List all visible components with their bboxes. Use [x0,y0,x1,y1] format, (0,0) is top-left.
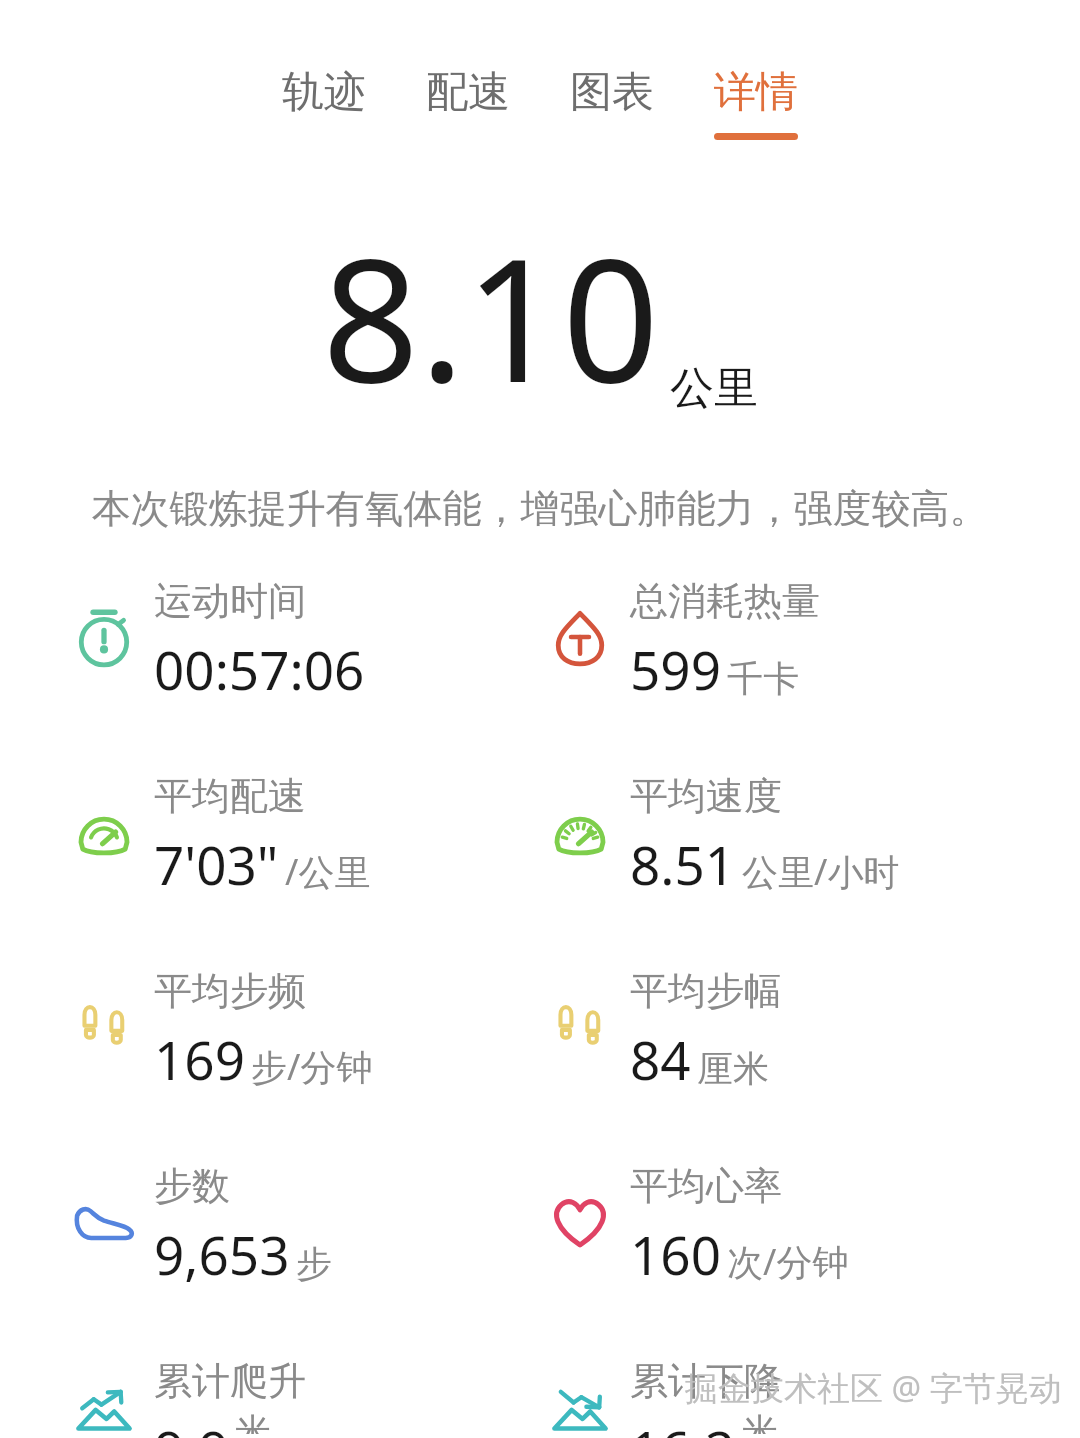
staticText: 160 [630,1218,721,1290]
button[interactable]: 步数 [0,1150,540,1345]
staticText: 米 [235,1409,271,1434]
staticText: 84 [630,1023,691,1095]
other: 平均速度 [548,800,612,864]
staticText: 00:57:06 [154,633,365,705]
staticText: 公里/小时 [742,847,900,896]
staticText: 步 [296,1241,332,1286]
staticText: 次/分钟 [727,1237,849,1286]
staticText: 累计爬升 [154,1357,306,1405]
staticText: 8.51 [630,828,736,900]
staticText: 16.2 [630,1413,736,1438]
staticText: 7'03" [154,828,279,900]
staticText: 步/分钟 [251,1042,373,1091]
button[interactable]: 累计下降 [540,1345,1080,1438]
button[interactable]: 配速 [420,62,516,144]
button[interactable]: 平均心率 [540,1150,1080,1345]
staticText: 9.9 [154,1413,229,1438]
staticText: 本次锻炼提升有氧体能，增强心肺能力，强度较高。 [20,484,1060,533]
staticText: 图表 [570,66,654,119]
other: 平均配速 [72,800,136,864]
staticText: 公里 [670,361,758,416]
staticText: 平均心率 [630,1162,782,1210]
staticText: 累计下降 [630,1357,782,1405]
button[interactable]: 平均配速 [0,760,540,955]
staticText: 千卡 [727,656,799,701]
staticText: 平均步频 [154,967,306,1015]
staticText: 平均配速 [154,772,306,820]
staticText: 厘米 [697,1046,769,1091]
staticText: 步数 [154,1162,230,1210]
staticText: 169 [154,1023,245,1095]
other: 总消耗热量 [548,605,612,669]
other: 累计爬升 [72,1385,136,1438]
staticText: 米 [742,1409,778,1434]
other: 步数 [72,1190,136,1254]
staticText: 599 [630,633,721,705]
staticText: 配速 [426,66,510,119]
button[interactable]: 平均步幅 [540,955,1080,1150]
staticText: 运动时间 [154,577,306,625]
button[interactable]: 总消耗热量 [540,565,1080,760]
other: 运动时间 [72,605,136,669]
staticText: 8.10 [322,200,660,432]
button[interactable]: 平均步频 [0,955,540,1150]
button[interactable]: 轨迹 [276,62,372,144]
button[interactable]: 图表 [564,62,660,144]
staticText: 掘金技术社区 @ 字节晃动 [685,1365,1062,1410]
other: 平均心率 [548,1190,612,1254]
staticText: 9,653 [154,1218,290,1290]
staticText: 轨迹 [282,66,366,119]
staticText: 平均步幅 [630,967,782,1015]
staticText: /公里 [285,847,371,896]
staticText: 详情 [714,66,798,119]
other: 累计下降 [548,1385,612,1438]
other: 平均步幅 [548,995,612,1059]
button[interactable]: 详情 [708,62,804,144]
button[interactable]: 运动时间 [0,565,540,760]
staticText: 平均速度 [630,772,782,820]
staticText: 总消耗热量 [630,577,820,625]
button[interactable]: 累计爬升 [0,1345,540,1438]
button[interactable]: 平均速度 [540,760,1080,955]
other: 平均步频 [72,995,136,1059]
